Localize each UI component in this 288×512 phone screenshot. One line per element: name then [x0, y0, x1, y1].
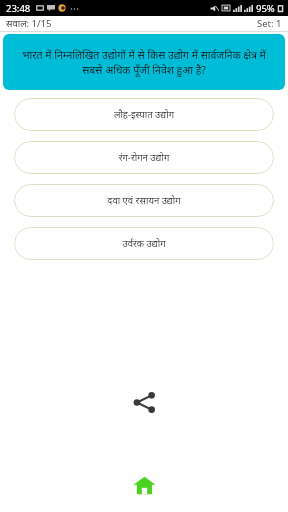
button[interactable]: Share	[127, 385, 161, 419]
button[interactable]: Home	[127, 468, 161, 502]
button[interactable]: दवा एवं रसायन उद्योग	[14, 184, 274, 217]
staticText: भारत में निम्नलिखित उद्योगों में से किस …	[13, 48, 275, 77]
staticText: दवा एवं रसायन उद्योग	[24, 194, 264, 207]
button[interactable]: रंग-रोगन उद्योग	[14, 141, 274, 174]
staticText: उर्वरक उद्योग	[24, 237, 264, 250]
staticText: 23:48	[6, 2, 31, 15]
button[interactable]: लौह-इस्पात उद्योग	[14, 98, 274, 131]
staticText: रंग-रोगन उद्योग	[24, 151, 264, 164]
staticText: सवाल: 1/15	[6, 17, 52, 30]
staticText: लौह-इस्पात उद्योग	[24, 108, 264, 121]
staticText: 95%	[256, 2, 275, 15]
button[interactable]: उर्वरक उद्योग	[14, 227, 274, 260]
staticText: Set: 1	[257, 17, 282, 30]
